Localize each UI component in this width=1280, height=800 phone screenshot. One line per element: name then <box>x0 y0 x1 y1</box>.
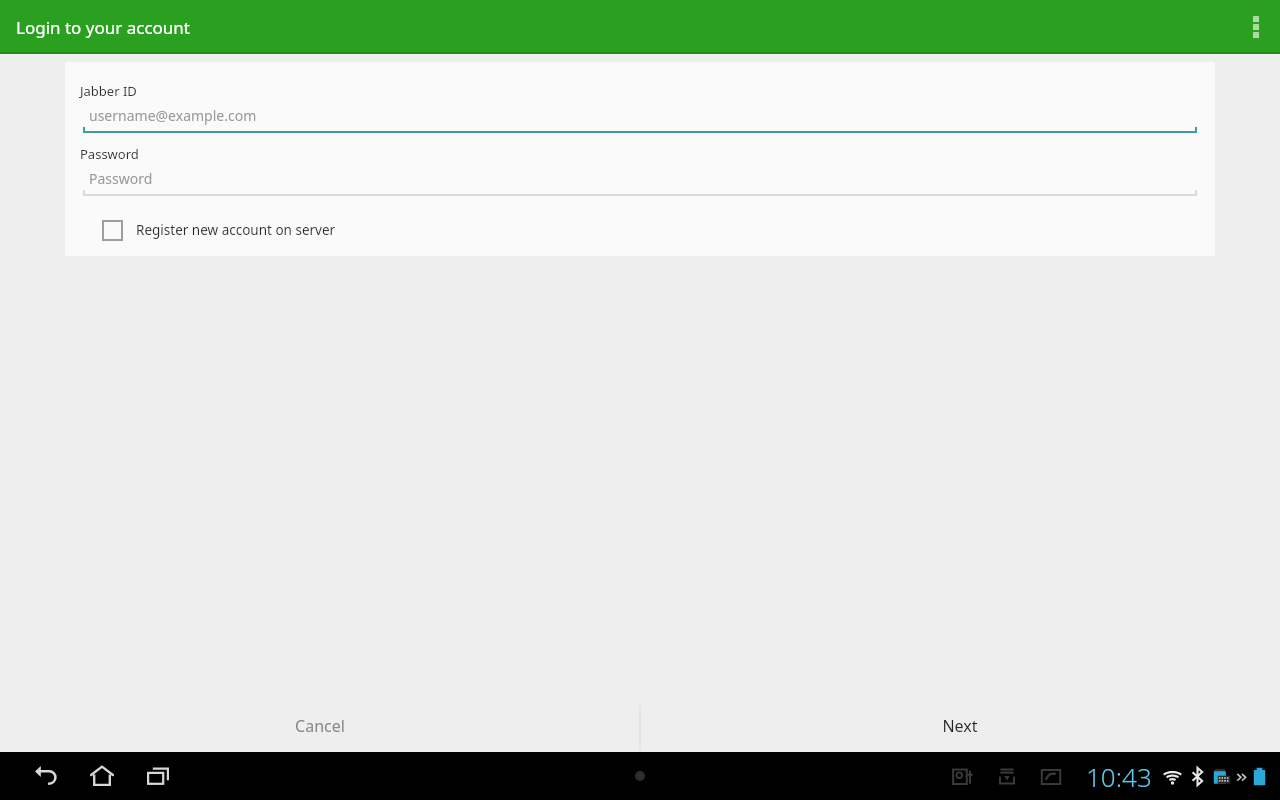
button[interactable]: Back <box>18 752 74 800</box>
button[interactable]: Home <box>74 752 130 800</box>
staticText: 10:43 <box>1086 759 1152 794</box>
staticText: Jabber ID <box>80 82 137 100</box>
staticText: Register new account on server <box>136 221 336 239</box>
button[interactable]: Register new account on server <box>80 213 336 247</box>
staticText: Next <box>942 715 978 737</box>
staticText: username@example.com <box>89 106 257 125</box>
button[interactable]: More options <box>1232 0 1280 54</box>
staticText: Password <box>80 145 139 163</box>
button[interactable]: username@example.com <box>83 106 1197 134</box>
staticText: Cancel <box>295 715 345 737</box>
button[interactable]: Password <box>83 169 1197 197</box>
staticText: Password <box>89 169 153 188</box>
staticText: Login to your account <box>16 16 190 39</box>
button[interactable]: Cancel <box>0 700 640 752</box>
button[interactable]: Next <box>640 700 1280 752</box>
button[interactable]: Recent apps <box>130 752 186 800</box>
